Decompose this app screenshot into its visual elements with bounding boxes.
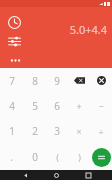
- button[interactable]: ): [68, 144, 90, 170]
- staticText: ÷: [98, 125, 104, 137]
- button[interactable]: 8: [23, 68, 46, 93]
- button[interactable]: 4: [0, 93, 23, 118]
- staticText: ): [78, 151, 81, 163]
- staticText: +: [76, 100, 82, 112]
- button[interactable]: 7: [0, 68, 23, 93]
- staticText: 8: [32, 74, 38, 88]
- staticText: .: [10, 150, 13, 164]
- button[interactable]: Backspace: [68, 68, 90, 93]
- button[interactable]: (: [46, 144, 68, 170]
- staticText: 5.0+4.4: [69, 22, 107, 37]
- staticText: ×: [76, 125, 82, 137]
- button[interactable]: More options: [8, 53, 22, 67]
- staticText: 1: [9, 124, 15, 138]
- button[interactable]: Clear: [90, 68, 112, 93]
- button[interactable]: ÷: [90, 118, 112, 144]
- staticText: 0: [32, 150, 38, 164]
- staticText: 6: [54, 99, 60, 113]
- button[interactable]: 3: [46, 118, 68, 144]
- staticText: 7: [9, 74, 15, 88]
- staticText: −: [98, 100, 104, 112]
- button[interactable]: History: [7, 15, 22, 30]
- staticText: 3: [54, 124, 60, 138]
- button[interactable]: Home: [49, 170, 63, 180]
- button[interactable]: 9: [46, 68, 68, 93]
- button[interactable]: 5: [23, 93, 46, 118]
- button[interactable]: Recents: [81, 170, 95, 180]
- button[interactable]: +: [68, 93, 90, 118]
- staticText: 4: [9, 99, 15, 113]
- button[interactable]: 2: [23, 118, 46, 144]
- button[interactable]: 6: [46, 93, 68, 118]
- button[interactable]: Back: [18, 170, 32, 180]
- staticText: 9: [54, 74, 60, 88]
- button[interactable]: Settings: [7, 34, 22, 49]
- staticText: (: [56, 151, 59, 163]
- button[interactable]: 0: [23, 144, 46, 170]
- button[interactable]: 1: [0, 118, 23, 144]
- staticText: 2: [32, 124, 38, 138]
- button[interactable]: Equals: [92, 148, 111, 167]
- staticText: 5: [32, 99, 38, 113]
- button[interactable]: −: [90, 93, 112, 118]
- button[interactable]: ×: [68, 118, 90, 144]
